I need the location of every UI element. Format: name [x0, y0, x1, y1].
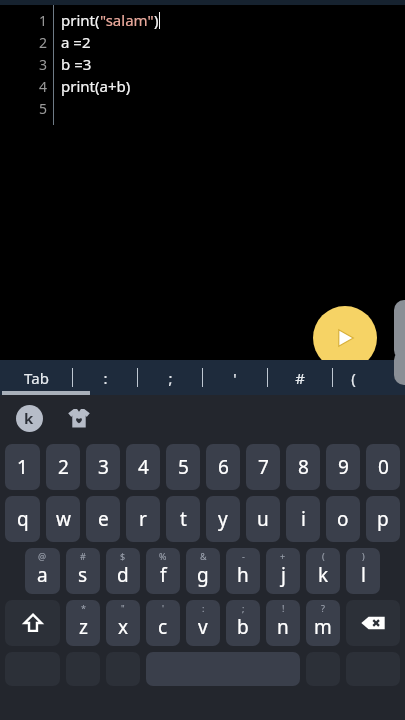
button[interactable]: @	[25, 548, 60, 594]
button[interactable]: e	[86, 496, 120, 542]
staticText: k	[318, 562, 329, 588]
staticText: "	[121, 602, 125, 614]
staticText: 3	[39, 55, 48, 74]
staticText: v	[198, 614, 208, 640]
button[interactable]: Tab	[0, 360, 72, 395]
staticText: Tab	[24, 368, 49, 388]
button[interactable]: 6	[206, 444, 240, 490]
staticText: ?	[321, 602, 325, 614]
button[interactable]: Theme	[64, 403, 94, 433]
button[interactable]: t	[166, 496, 200, 542]
button[interactable]: Keyboard settings	[14, 403, 44, 433]
staticText: u	[257, 506, 269, 532]
staticText: b	[237, 614, 249, 640]
staticText: 3	[98, 454, 109, 480]
staticText: )	[362, 550, 365, 562]
staticText: k	[24, 408, 34, 428]
button[interactable]: p	[366, 496, 400, 542]
staticText: !	[282, 602, 285, 614]
staticText: e	[98, 506, 109, 532]
staticText: l	[361, 562, 366, 588]
staticText: h	[237, 562, 249, 588]
staticText: 4	[138, 454, 149, 480]
button[interactable]: q	[5, 496, 40, 542]
staticText: +	[280, 550, 286, 562]
button[interactable]: u	[246, 496, 280, 542]
staticText: &	[200, 550, 207, 562]
staticText: f	[160, 562, 167, 588]
staticText: 2	[58, 454, 69, 480]
button[interactable]: 0	[366, 444, 400, 490]
button[interactable]: +	[266, 548, 300, 594]
staticText: '	[162, 602, 165, 614]
button[interactable]: #	[268, 360, 332, 395]
button[interactable]: 2	[46, 444, 80, 490]
button[interactable]: r	[126, 496, 160, 542]
button[interactable]: *	[66, 600, 100, 646]
button[interactable]: 8	[286, 444, 320, 490]
button[interactable]: Shift	[5, 600, 60, 646]
staticText: d	[117, 562, 129, 588]
staticText: y	[218, 506, 228, 532]
button[interactable]: :	[73, 360, 137, 395]
button[interactable]: w	[46, 496, 80, 542]
button[interactable]: 7	[246, 444, 280, 490]
staticText: 5	[39, 99, 48, 118]
staticText: 7	[258, 454, 269, 480]
staticText: #	[80, 550, 86, 562]
staticText: print(	[61, 10, 100, 30]
button[interactable]: '	[146, 600, 180, 646]
staticText: r	[139, 506, 147, 532]
button[interactable]: ;	[138, 360, 202, 395]
staticText: b =3	[61, 54, 92, 74]
button[interactable]: (	[306, 548, 340, 594]
button[interactable]: :	[186, 600, 220, 646]
staticText: x	[118, 614, 129, 640]
button[interactable]: 4	[126, 444, 160, 490]
staticText: (	[322, 550, 325, 562]
button[interactable]: 3	[86, 444, 120, 490]
button[interactable]: '	[203, 360, 267, 395]
button[interactable]: %	[146, 548, 180, 594]
staticText: 2	[39, 33, 48, 52]
staticText: -	[242, 550, 245, 562]
button[interactable]: 1	[5, 444, 40, 490]
staticText: 4	[39, 77, 48, 96]
staticText: ;	[242, 602, 245, 614]
button[interactable]: 5	[166, 444, 200, 490]
button[interactable]: Backspace	[346, 600, 400, 646]
staticText: n	[277, 614, 289, 640]
staticText: %	[159, 550, 167, 562]
button[interactable]: ?	[306, 600, 340, 646]
button[interactable]: $	[106, 548, 140, 594]
staticText: a	[37, 562, 48, 588]
button[interactable]: !	[266, 600, 300, 646]
staticText: 6	[218, 454, 229, 480]
staticText: q	[17, 506, 29, 532]
staticText: a =2	[61, 32, 91, 52]
button[interactable]: y	[206, 496, 240, 542]
button[interactable]: 9	[326, 444, 360, 490]
staticText: :	[202, 602, 205, 614]
button[interactable]: "	[106, 600, 140, 646]
staticText: 8	[298, 454, 309, 480]
staticText: p	[377, 506, 389, 532]
button[interactable]: o	[326, 496, 360, 542]
button[interactable]: i	[286, 496, 320, 542]
button[interactable]: -	[226, 548, 260, 594]
button[interactable]: Run	[313, 306, 377, 370]
button[interactable]: &	[186, 548, 220, 594]
staticText: w	[56, 506, 71, 532]
button[interactable]: #	[66, 548, 100, 594]
button[interactable]: )	[346, 548, 380, 594]
button[interactable]: (	[333, 360, 373, 395]
button[interactable]: ;	[226, 600, 260, 646]
staticText: *	[81, 602, 86, 614]
staticText: #	[295, 368, 305, 388]
